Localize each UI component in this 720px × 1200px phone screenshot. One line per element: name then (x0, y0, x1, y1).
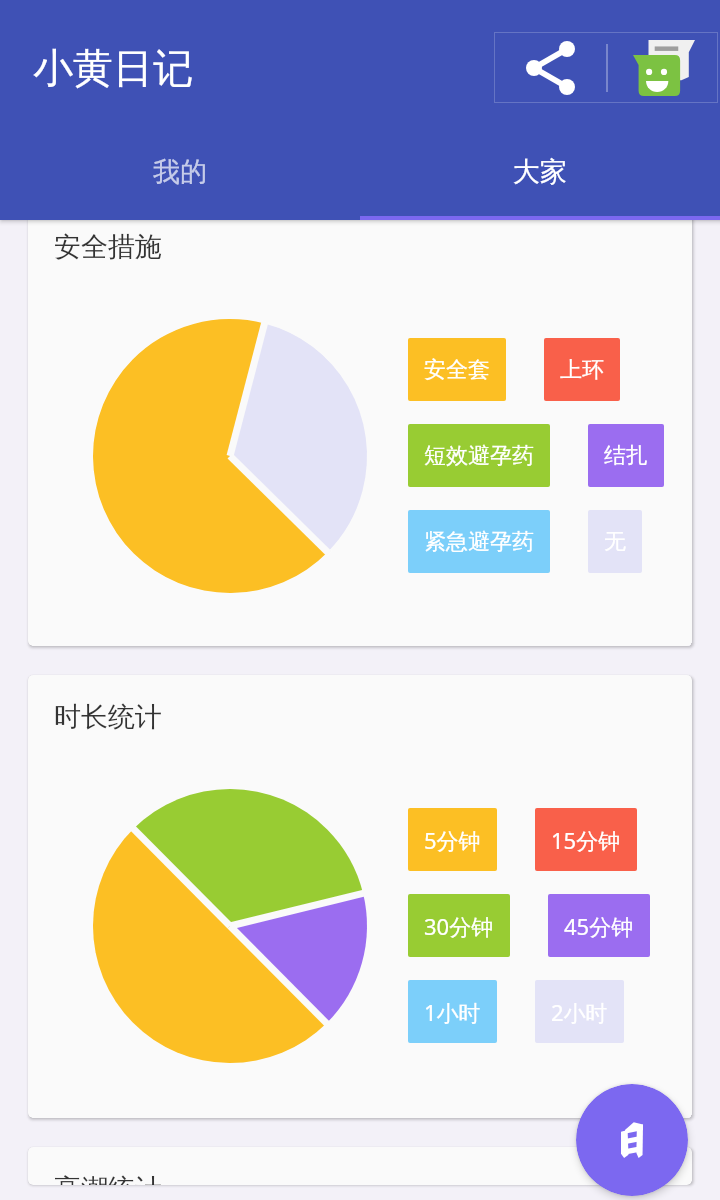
staticText: 大家 (513, 155, 567, 189)
staticText: 时长统计 (54, 700, 162, 734)
button[interactable]: 2小时 (535, 980, 624, 1043)
button[interactable]: New entry (576, 1084, 688, 1196)
staticText: 45分钟 (564, 911, 634, 941)
button[interactable]: 我的 (0, 124, 360, 220)
button[interactable]: 45分钟 (548, 894, 650, 957)
button[interactable]: 紧急避孕药 (408, 510, 550, 573)
staticText: 小黄日记 (33, 43, 193, 93)
button[interactable]: 安全套 (408, 338, 506, 401)
button[interactable]: Share (526, 41, 575, 95)
button[interactable]: 30分钟 (408, 894, 510, 957)
staticText: 1小时 (424, 997, 481, 1027)
staticText: 5分钟 (424, 825, 481, 855)
staticText: 结扎 (604, 442, 648, 470)
button[interactable]: 短效避孕药 (408, 424, 550, 487)
button[interactable]: Messaging (633, 40, 695, 96)
button[interactable]: 5分钟 (408, 808, 497, 871)
button[interactable]: 无 (588, 510, 642, 573)
staticText: 高潮统计 (54, 1172, 162, 1185)
staticText: 无 (604, 528, 626, 556)
staticText: 短效避孕药 (424, 442, 534, 470)
staticText: 安全套 (424, 356, 490, 384)
button[interactable]: 大家 (360, 124, 720, 220)
staticText: 15分钟 (551, 825, 621, 855)
button[interactable]: 15分钟 (535, 808, 637, 871)
button[interactable]: 上环 (544, 338, 620, 401)
staticText: 紧急避孕药 (424, 528, 534, 556)
staticText: 30分钟 (424, 911, 494, 941)
button[interactable]: 结扎 (588, 424, 664, 487)
staticText: 上环 (560, 356, 604, 384)
staticText: 2小时 (551, 997, 608, 1027)
button[interactable]: 1小时 (408, 980, 497, 1043)
staticText: 安全措施 (54, 230, 162, 264)
staticText: 我的 (153, 155, 207, 189)
